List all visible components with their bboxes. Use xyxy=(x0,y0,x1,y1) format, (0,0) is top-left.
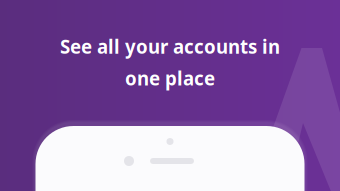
staticText: See all your accounts in xyxy=(60,34,280,59)
staticText: one place xyxy=(125,66,215,91)
